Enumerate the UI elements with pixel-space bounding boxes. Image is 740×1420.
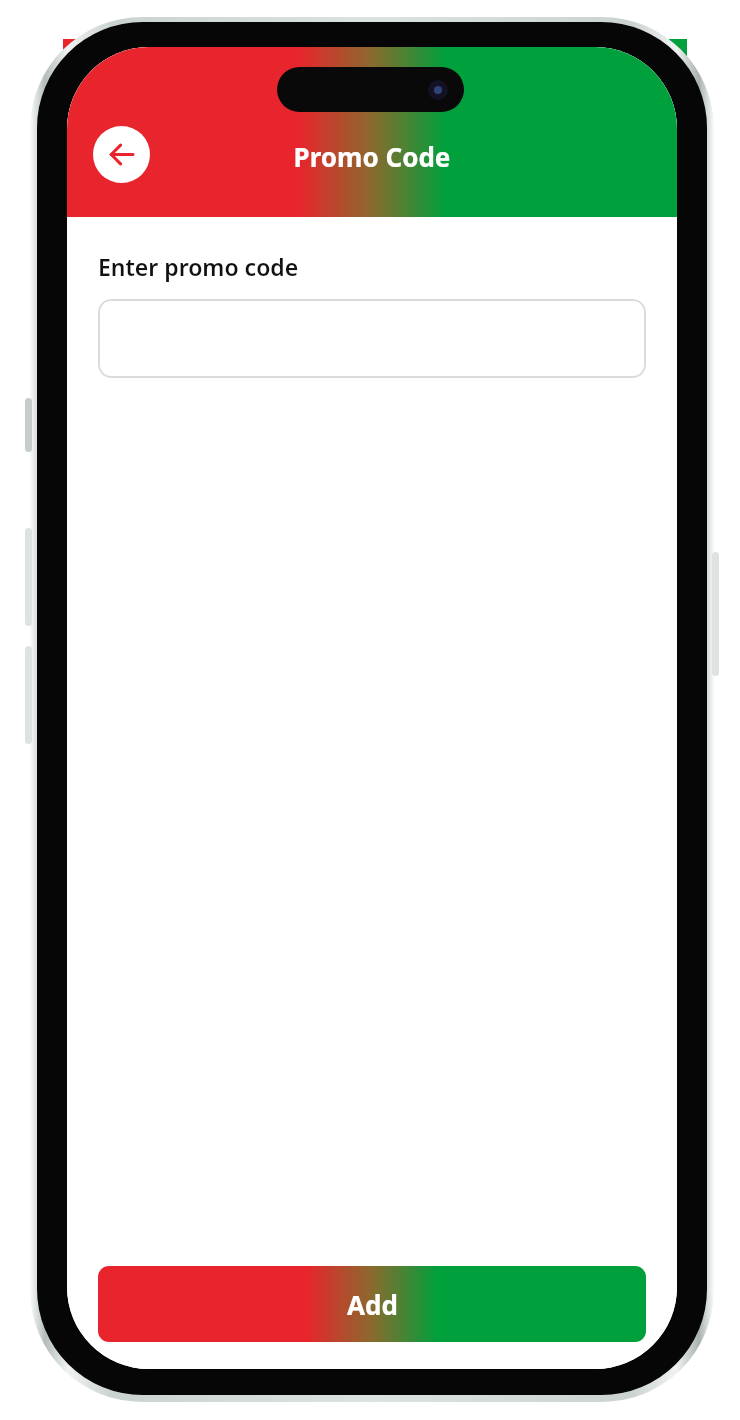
staticText: Promo Code: [67, 139, 677, 174]
staticText: Enter promo code: [98, 251, 299, 282]
button[interactable]: Back: [93, 126, 150, 183]
button[interactable]: Add: [98, 1266, 646, 1342]
staticText: Add: [347, 1287, 398, 1322]
button[interactable]: [98, 299, 646, 378]
